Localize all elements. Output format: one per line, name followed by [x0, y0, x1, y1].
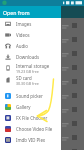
staticText: Images: [16, 21, 32, 27]
staticText: Open from: [3, 9, 30, 16]
staticText: Imdb VID Plex: [16, 137, 46, 143]
staticText: Videos: [16, 32, 30, 38]
button[interactable]: Videos: [0, 29, 61, 40]
staticText: Downloads: [16, 54, 39, 60]
button[interactable]: Audio: [0, 40, 61, 51]
staticText: 30.30 GB free: [16, 81, 39, 86]
staticText: Audio: [16, 43, 29, 49]
button[interactable]: Images: [0, 18, 61, 29]
staticText: FX File Chooser: [16, 115, 48, 121]
staticText: SD card: [16, 75, 32, 81]
button[interactable]: Downloads: [0, 51, 61, 62]
button[interactable]: Gallery: [0, 101, 61, 112]
button[interactable]: SD card: [0, 74, 61, 86]
staticText: Sound picker: [16, 93, 43, 99]
staticText: Gallery: [16, 104, 31, 110]
button[interactable]: Choose Video File: [0, 123, 61, 134]
staticText: Internal storage: [16, 63, 50, 69]
button[interactable]: Open from: [0, 6, 61, 18]
staticText: Choose Video File: [16, 126, 53, 132]
button[interactable]: Sound picker: [0, 90, 61, 101]
button[interactable]: FX File Chooser: [0, 112, 61, 123]
staticText: 19.23 GB free: [16, 69, 39, 74]
button[interactable]: Internal storage: [0, 62, 61, 74]
button[interactable]: Imdb VID Plex: [0, 134, 61, 145]
